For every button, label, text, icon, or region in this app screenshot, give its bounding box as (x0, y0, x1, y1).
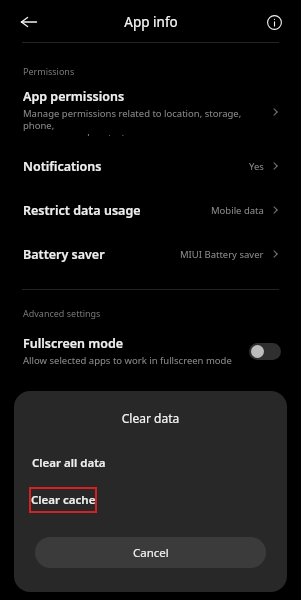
button[interactable]: Clear cache (29, 487, 97, 513)
button[interactable]: Fullscreen mode toggle (249, 343, 281, 360)
staticText: Clear data (14, 410, 287, 426)
staticText: Permissions (23, 65, 75, 77)
staticText: Clear cache (31, 492, 96, 508)
button[interactable]: Back (10, 3, 48, 41)
staticText: App permissions (23, 88, 125, 105)
staticText: MIUI Battery saver (180, 248, 264, 261)
staticText: Manage permissions related to location, … (23, 107, 269, 136)
button[interactable]: Battery saver (0, 232, 301, 276)
staticText: Fullscreen mode (23, 335, 124, 352)
staticText: Allow selected apps to work in fullscree… (23, 354, 232, 367)
button[interactable]: Cancel (35, 537, 266, 568)
staticText: Clear all data (32, 455, 106, 471)
staticText: Notifications (23, 158, 102, 175)
button[interactable]: Notifications (0, 144, 301, 188)
staticText: Battery saver (23, 246, 105, 263)
button[interactable]: Restrict data usage (0, 188, 301, 232)
staticText: Restrict data usage (23, 202, 141, 219)
button[interactable]: App details (257, 5, 291, 39)
staticText: Mobile data (211, 204, 264, 217)
button[interactable]: Fullscreen mode (0, 331, 301, 371)
staticText: Cancel (133, 545, 169, 561)
staticText: App info (124, 13, 178, 31)
button[interactable]: App permissions (0, 88, 301, 136)
staticText: Advanced settings (23, 307, 101, 319)
staticText: Yes (249, 160, 264, 173)
button[interactable]: Clear all data (14, 447, 287, 479)
